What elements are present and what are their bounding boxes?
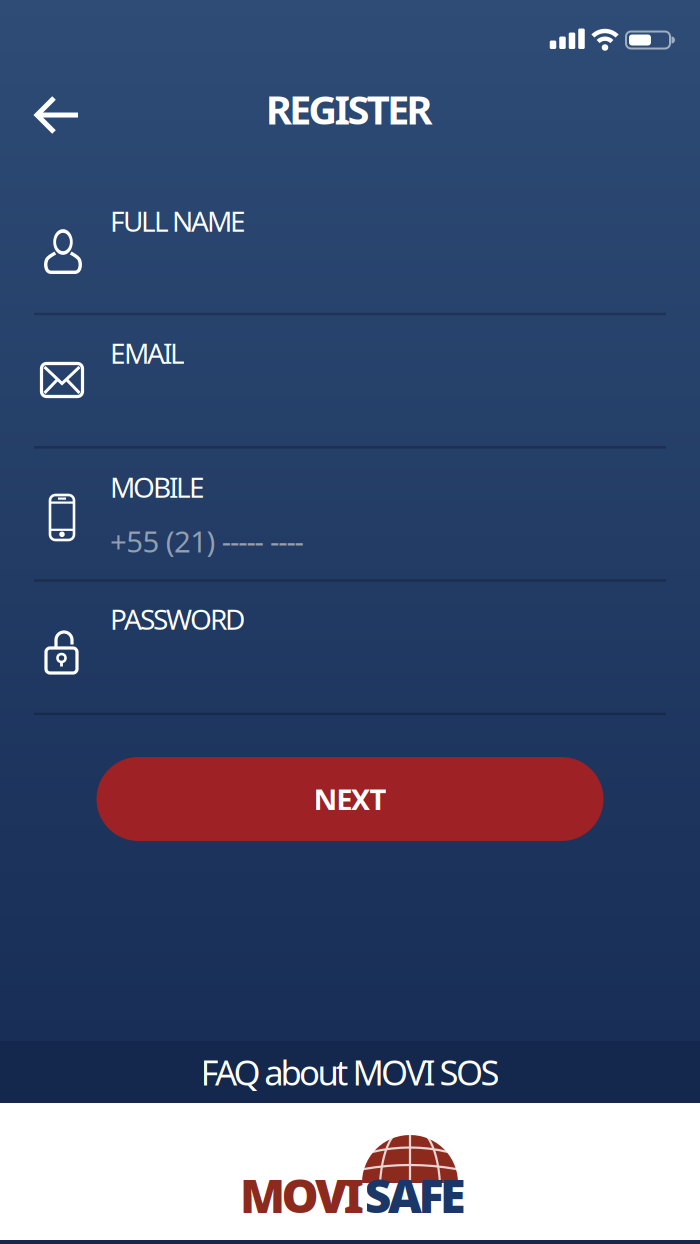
staticText: NEXT bbox=[314, 779, 386, 818]
staticText: MOBILE bbox=[110, 468, 205, 506]
button[interactable]: Mobile bbox=[0, 447, 700, 580]
button[interactable]: Full name bbox=[0, 181, 700, 314]
button[interactable]: NEXT bbox=[96, 757, 603, 841]
button[interactable]: Password bbox=[0, 581, 700, 714]
staticText: FULL NAME bbox=[110, 202, 246, 240]
staticText: +55 (21) ----- ---- bbox=[110, 521, 304, 560]
staticText: PASSWORD bbox=[110, 600, 245, 638]
staticText: EMAIL bbox=[110, 334, 185, 372]
staticText: REGISTER bbox=[266, 82, 432, 135]
button[interactable]: Email bbox=[0, 314, 700, 447]
staticText: MOVI bbox=[240, 1164, 364, 1226]
staticText: SAFE bbox=[364, 1164, 466, 1226]
staticText: FAQ about MOVI SOS bbox=[201, 1049, 499, 1095]
button[interactable]: FAQ about MOVI SOS bbox=[0, 1041, 700, 1103]
button[interactable]: Back bbox=[23, 85, 93, 145]
